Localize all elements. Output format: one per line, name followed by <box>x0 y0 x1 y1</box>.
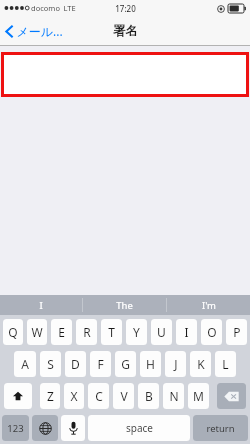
staticText: docomo <box>31 3 60 13</box>
button[interactable]: A <box>14 351 36 377</box>
button[interactable]: W <box>27 319 47 345</box>
staticText: D <box>71 356 80 372</box>
staticText: R <box>83 324 91 340</box>
button[interactable]: L <box>215 351 236 377</box>
button[interactable]: H <box>140 351 161 377</box>
staticText: I <box>39 299 43 312</box>
button[interactable]: B <box>138 383 159 409</box>
button[interactable]: F <box>90 351 111 377</box>
button[interactable]: V <box>113 383 134 409</box>
button[interactable]: Backspace <box>217 383 246 409</box>
button[interactable]: P <box>226 319 247 345</box>
staticText: E <box>58 324 65 340</box>
staticText: J <box>174 356 178 372</box>
staticText: Y <box>133 324 140 340</box>
button[interactable]: The <box>83 295 166 315</box>
button[interactable]: Dictation <box>61 415 85 441</box>
button[interactable]: X <box>64 383 84 409</box>
staticText: O <box>207 324 217 340</box>
staticText: Q <box>8 324 18 340</box>
button[interactable]: I <box>176 319 197 345</box>
button[interactable]: 123 <box>2 415 29 441</box>
staticText: S <box>47 356 54 372</box>
staticText: U <box>157 324 166 340</box>
button[interactable]: Q <box>3 319 23 345</box>
staticText: G <box>121 356 130 372</box>
staticText: 17:20 <box>115 3 136 14</box>
staticText: P <box>233 324 241 340</box>
staticText: A <box>21 356 29 372</box>
button[interactable]: T <box>101 319 122 345</box>
staticText: T <box>108 324 115 340</box>
button[interactable]: E <box>51 319 72 345</box>
button[interactable]: I'm <box>167 295 250 315</box>
staticText: C <box>95 388 103 404</box>
staticText: The <box>116 299 133 312</box>
button[interactable]: メール... <box>0 19 71 43</box>
button[interactable]: U <box>151 319 172 345</box>
staticText: M <box>193 388 204 404</box>
staticText: V <box>120 388 128 404</box>
button[interactable]: D <box>65 351 86 377</box>
button[interactable]: N <box>163 383 184 409</box>
staticText: Z <box>47 388 54 404</box>
button[interactable]: S <box>40 351 61 377</box>
button[interactable]: R <box>76 319 97 345</box>
staticText: 署名 <box>113 23 138 39</box>
button[interactable]: Change keyboard <box>32 415 58 441</box>
staticText: space <box>126 421 153 435</box>
staticText: K <box>197 356 205 372</box>
staticText: B <box>145 388 153 404</box>
button[interactable]: space <box>88 415 190 441</box>
staticText: W <box>31 324 43 340</box>
button[interactable]: Z <box>40 383 60 409</box>
button[interactable]: O <box>201 319 222 345</box>
staticText: return <box>206 422 235 435</box>
button[interactable]: Y <box>126 319 147 345</box>
staticText: N <box>169 388 179 404</box>
button[interactable]: Shift <box>4 383 32 409</box>
staticText: I <box>184 324 189 340</box>
button[interactable]: G <box>115 351 136 377</box>
staticText: I'm <box>202 299 216 312</box>
button[interactable]: M <box>188 383 209 409</box>
staticText: L <box>222 356 229 372</box>
button[interactable]: J <box>165 351 186 377</box>
staticText: F <box>97 356 104 372</box>
staticText: 123 <box>7 422 24 435</box>
button[interactable]: C <box>88 383 109 409</box>
button[interactable]: I <box>0 295 82 315</box>
button[interactable]: K <box>190 351 211 377</box>
staticText: LTE <box>63 3 76 13</box>
staticText: メール... <box>16 23 63 39</box>
staticText: H <box>146 356 155 372</box>
button[interactable]: return <box>193 415 248 441</box>
staticText: X <box>70 388 78 404</box>
